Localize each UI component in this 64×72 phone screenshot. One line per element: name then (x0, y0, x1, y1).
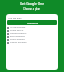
button[interactable]: Share with 5 (7, 29, 57, 32)
staticText: Share with 5 (10, 29, 24, 32)
button[interactable]: Subscribe (7, 20, 57, 25)
staticText: 15 GB storage (10, 26, 26, 29)
staticText: Photo editing (10, 38, 25, 41)
staticText: 100 GB plan (8, 16, 22, 19)
button[interactable]: Extra benefits (7, 35, 57, 38)
button[interactable]: 15 GB storage (7, 26, 57, 29)
staticText: Extra benefits (10, 35, 25, 38)
button[interactable]: Cancel anytime (7, 41, 57, 44)
staticText: Google experts (10, 32, 27, 35)
button[interactable]: Google experts (7, 32, 57, 35)
staticText: Choose a plan (23, 7, 41, 11)
staticText: Subscribe (27, 21, 38, 24)
staticText: Get Google One (20, 2, 44, 6)
staticText: Cancel anytime (10, 41, 27, 44)
button[interactable]: Photo editing (7, 38, 57, 41)
